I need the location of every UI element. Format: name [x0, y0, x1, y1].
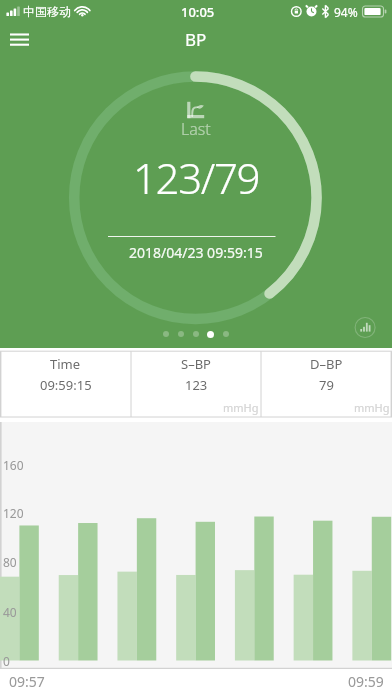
button[interactable]: D–BP	[261, 348, 392, 422]
staticText: mmHg	[354, 400, 390, 415]
button[interactable]: Page 4	[203, 329, 218, 339]
staticText: 0	[3, 653, 10, 669]
staticText: 10:05	[181, 3, 215, 21]
button[interactable]: Page 5	[218, 329, 233, 339]
staticText: 2018/04/23 09:59:15	[129, 243, 263, 262]
button[interactable]: S–BP	[131, 348, 261, 422]
button[interactable]: Page 3	[188, 329, 203, 339]
staticText: 80	[3, 554, 17, 570]
staticText: S–BP	[181, 355, 211, 373]
staticText: 123/79	[133, 149, 260, 206]
staticText: 09:57	[9, 672, 45, 691]
staticText: mmHg	[223, 400, 259, 415]
staticText: 40	[3, 604, 17, 620]
staticText: 09:59:15	[40, 376, 92, 394]
staticText: 123	[185, 376, 208, 394]
staticText: 09:59	[348, 672, 384, 691]
staticText: D–BP	[310, 355, 343, 373]
button[interactable]: Page 2	[173, 329, 188, 339]
staticText: 160	[3, 457, 24, 473]
staticText: Last	[181, 118, 211, 140]
staticText: 中国移动	[23, 4, 71, 19]
staticText: 120	[3, 505, 24, 521]
staticText: Time	[50, 355, 81, 373]
button[interactable]: Page 1	[158, 329, 173, 339]
button[interactable]: Statistics	[351, 313, 379, 341]
button[interactable]: Time	[0, 348, 131, 422]
staticText: 94%	[334, 4, 358, 20]
staticText: BP	[185, 28, 207, 51]
button[interactable]: Menu	[0, 24, 40, 56]
staticText: 79	[319, 376, 334, 394]
